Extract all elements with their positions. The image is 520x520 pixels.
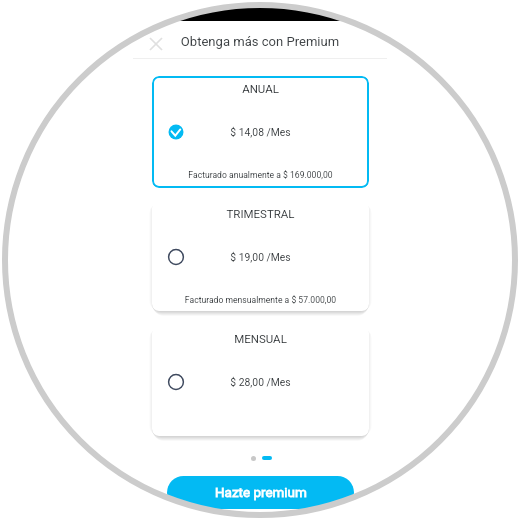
staticText: Facturado anualmente a $ 169.000,00 [152, 170, 369, 180]
button[interactable]: MENSUAL [152, 326, 369, 436]
staticText: Facturado mensualmente a $ 57.000,00 [152, 295, 369, 305]
button[interactable]: Select TRIMESTRAL [168, 249, 184, 265]
staticText: $ 14,08 /Mes [152, 126, 369, 138]
button[interactable]: Close [143, 31, 169, 57]
button[interactable]: Select MENSUAL [168, 374, 184, 390]
button[interactable]: ANUAL selected [168, 124, 184, 140]
button[interactable]: Page 2, current page [262, 456, 272, 460]
button[interactable]: Hazte premium [167, 476, 354, 509]
staticText: ANUAL [152, 82, 369, 95]
staticText: MENSUAL [152, 332, 369, 345]
button[interactable]: ANUAL [152, 76, 369, 188]
staticText: Hazte premium [215, 485, 307, 501]
button[interactable]: TRIMESTRAL [152, 201, 369, 311]
staticText: $ 19,00 /Mes [152, 251, 369, 263]
staticText: Obtenga más con Premium [0, 34, 520, 49]
staticText: $ 28,00 /Mes [152, 376, 369, 388]
button[interactable]: Page 1 [251, 456, 256, 461]
staticText: TRIMESTRAL [152, 207, 369, 220]
